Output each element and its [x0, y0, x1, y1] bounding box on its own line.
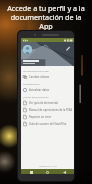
button[interactable]: Inicio [41, 169, 54, 176]
staticText: Actualizar datos [29, 88, 50, 92]
staticText: Cambiar idioma [29, 75, 50, 79]
button[interactable]: Manual de operaciones de la FSSA [21, 106, 74, 113]
staticText: ¿Cómo funciona esto? [23, 95, 49, 98]
button[interactable]: Cambiar idioma [21, 73, 74, 80]
staticText: Manual de operaciones de la FSSA [29, 108, 72, 112]
staticText: Reportar un error [29, 115, 52, 119]
button[interactable]: Reportar un error [21, 113, 74, 120]
staticText: Guía de usuario del StockPilot [29, 122, 67, 126]
staticText: Ver guía de bienvenida [29, 101, 58, 105]
staticText: Información de la app [23, 69, 49, 72]
button[interactable]: Foto de perfil [23, 45, 32, 54]
button[interactable]: Recientes [25, 169, 38, 176]
button[interactable]: Atrás [58, 169, 71, 176]
button[interactable]: Actualizar datos [21, 86, 74, 93]
button[interactable]: Ver guía de bienvenida [21, 99, 74, 106]
button[interactable]: Guía de usuario del StockPilot [21, 120, 74, 127]
staticText: Configuración [23, 82, 40, 85]
button[interactable]: Editar perfil [65, 45, 71, 51]
staticText: Accede a tu perfil y a la documentación … [4, 3, 88, 31]
staticText: Versión 2.0.1 #7 [39, 164, 57, 167]
